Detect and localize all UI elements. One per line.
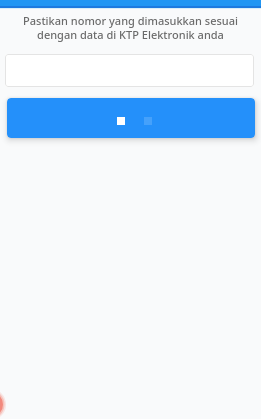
button[interactable]: App bar bbox=[0, 0, 261, 8]
button[interactable]: Lanjut bbox=[7, 98, 255, 138]
staticText: Pastikan nomor yang dimasukkan sesuai de… bbox=[8, 13, 253, 42]
button[interactable]: Nomor KTP bbox=[5, 54, 254, 87]
